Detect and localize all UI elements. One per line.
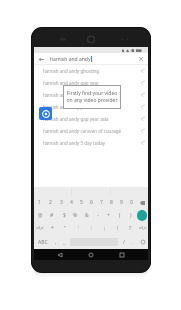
button[interactable]: 7	[96, 196, 106, 209]
button[interactable]: 5	[76, 196, 86, 209]
staticText: hamish and andy 5 day today	[43, 140, 105, 146]
button[interactable]: /	[119, 235, 128, 249]
button[interactable]: *	[46, 222, 59, 235]
button[interactable]: 2	[45, 196, 56, 209]
staticText: '	[78, 225, 80, 232]
button[interactable]: &	[81, 209, 92, 222]
staticText: "	[64, 225, 67, 232]
button[interactable]: Clear query	[137, 55, 145, 63]
button[interactable]: 9	[116, 196, 126, 209]
button[interactable]: Back	[37, 55, 46, 64]
button[interactable]: hamish and andy gap year	[34, 77, 148, 89]
staticText: ;	[104, 225, 106, 232]
staticText: #	[50, 212, 54, 219]
button[interactable]: #	[46, 209, 58, 222]
staticText: 3	[60, 199, 63, 206]
button[interactable]: @	[34, 209, 46, 222]
button[interactable]: App icon	[39, 107, 52, 120]
staticText: =\<	[139, 225, 147, 232]
button[interactable]: hamish and andy gap year asia	[34, 113, 148, 125]
staticText: ABC	[38, 239, 48, 246]
staticText: 7	[100, 199, 103, 206]
staticText: 8	[110, 199, 113, 206]
staticText: &	[85, 212, 89, 219]
staticText: Firstly find your video on any video pro…	[65, 90, 119, 104]
staticText: +	[107, 212, 110, 219]
staticText: 9	[120, 199, 123, 206]
button[interactable]: 4	[66, 196, 76, 209]
staticText: 4	[70, 199, 73, 206]
staticText: :	[91, 225, 93, 232]
staticText: $	[63, 212, 66, 219]
staticText: 6	[90, 199, 93, 206]
staticText: -	[97, 212, 99, 219]
button[interactable]: 6	[86, 196, 96, 209]
staticText: *	[51, 225, 54, 232]
staticText: hamish and andy gap year	[43, 80, 100, 86]
button[interactable]: Back	[34, 53, 148, 65]
staticText: ,	[55, 239, 57, 246]
button[interactable]: %	[70, 209, 81, 222]
button[interactable]: hamish and andy caravan of courage	[34, 125, 148, 137]
button[interactable]: Emoji	[137, 235, 148, 249]
staticText: hamish and andy	[43, 92, 80, 98]
staticText: 1	[38, 199, 41, 206]
staticText: =\<	[36, 225, 44, 232]
button[interactable]: Recent apps	[117, 250, 127, 260]
button[interactable]: $	[58, 209, 70, 222]
staticText: /	[123, 239, 125, 246]
button[interactable]: .	[128, 235, 137, 249]
button[interactable]: =\<	[137, 222, 148, 235]
button[interactable]: Backspace	[136, 196, 148, 209]
button[interactable]: Home	[86, 250, 96, 260]
button[interactable]: hamish and andy ghosting	[34, 65, 148, 77]
staticText: hamish and andy gap year asia	[43, 116, 109, 122]
staticText: _	[63, 239, 66, 246]
staticText: %	[73, 212, 78, 219]
button[interactable]: ,	[51, 235, 60, 249]
staticText: !	[117, 225, 119, 232]
staticText: @	[38, 212, 43, 219]
button[interactable]: )	[125, 209, 136, 222]
button[interactable]: hamish and andy podcast	[34, 101, 148, 113]
button[interactable]: +	[103, 209, 114, 222]
button[interactable]: '	[72, 222, 85, 235]
button[interactable]: 3	[56, 196, 66, 209]
button[interactable]: Back	[55, 250, 65, 260]
staticText: .	[132, 239, 134, 246]
staticText: 5	[80, 199, 83, 206]
staticText: )	[130, 212, 132, 219]
button[interactable]: :	[85, 222, 98, 235]
button[interactable]: ?	[124, 222, 137, 235]
button[interactable]: Search	[137, 210, 147, 221]
staticText: 2	[49, 199, 52, 206]
button[interactable]: !	[111, 222, 124, 235]
button[interactable]: 1	[34, 196, 45, 209]
button[interactable]: =\<	[34, 222, 46, 235]
staticText: hamish and andy ghosting	[43, 68, 100, 74]
button[interactable]: hamish and andy 5 day today	[34, 137, 148, 149]
staticText: hamish and andy	[50, 56, 91, 63]
button[interactable]: hamish and andy	[34, 89, 148, 101]
button[interactable]: 8	[106, 196, 116, 209]
staticText: hamish and andy podcast	[43, 104, 98, 110]
button[interactable]: -	[92, 209, 103, 222]
button[interactable]: ABC	[34, 235, 51, 249]
button[interactable]: "	[59, 222, 72, 235]
staticText: ?	[129, 225, 132, 232]
staticText: hamish and andy caravan of courage	[43, 128, 122, 134]
staticText: 0	[130, 199, 133, 206]
button[interactable]: _	[60, 235, 69, 249]
button[interactable]: 0	[126, 196, 136, 209]
staticText: (	[119, 212, 121, 219]
button[interactable]: ;	[98, 222, 111, 235]
button[interactable]: (	[114, 209, 125, 222]
